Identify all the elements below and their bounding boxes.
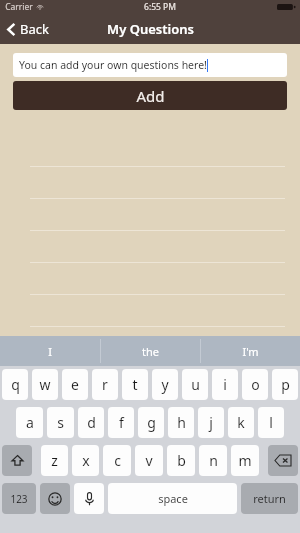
button[interactable]: b [167, 445, 195, 476]
staticText: the [142, 344, 159, 359]
button[interactable]: g [138, 407, 164, 438]
button[interactable]: k [228, 407, 254, 438]
button[interactable]: Dictate [74, 483, 104, 514]
staticText: return [253, 491, 286, 506]
staticText: You can add your own questions here! [19, 58, 207, 72]
staticText: 6:55 PM [144, 1, 176, 13]
staticText: I'm [242, 344, 259, 359]
staticText: c [114, 451, 121, 470]
button[interactable]: Add [13, 81, 287, 110]
staticText: i [223, 375, 227, 394]
staticText: z [51, 451, 58, 470]
button[interactable] [0, 295, 300, 327]
button[interactable] [0, 263, 300, 295]
staticText: x [82, 451, 90, 470]
button[interactable]: Shift [2, 445, 32, 476]
button[interactable]: You can add your own questions here! [13, 53, 287, 77]
staticText: 123 [10, 492, 28, 506]
button[interactable]: o [242, 369, 268, 400]
button[interactable]: 123 [2, 483, 36, 514]
staticText: p [281, 375, 290, 394]
button[interactable]: z [41, 445, 68, 476]
staticText: Back [20, 20, 49, 38]
button[interactable]: x [72, 445, 99, 476]
staticText: h [177, 413, 186, 432]
button[interactable]: n [199, 445, 227, 476]
button[interactable]: Back [0, 16, 59, 42]
button[interactable]: I [0, 336, 100, 366]
staticText: a [26, 413, 34, 432]
staticText: k [237, 413, 245, 432]
button[interactable]: e [62, 369, 88, 400]
button[interactable]: d [78, 407, 104, 438]
staticText: n [209, 451, 218, 470]
staticText: w [39, 375, 51, 394]
staticText: Add [136, 86, 165, 106]
button[interactable]: l [258, 407, 284, 438]
staticText: My Questions [107, 20, 194, 38]
button[interactable]: s [47, 407, 74, 438]
button[interactable]: f [108, 407, 134, 438]
button[interactable]: q [2, 369, 28, 400]
staticText: g [147, 413, 156, 432]
staticText: r [102, 375, 108, 394]
button[interactable]: r [92, 369, 118, 400]
button[interactable]: h [168, 407, 194, 438]
staticText: space [158, 491, 188, 506]
button[interactable]: y [152, 369, 178, 400]
staticText: o [251, 375, 260, 394]
button[interactable]: a [16, 407, 43, 438]
button[interactable]: m [231, 445, 259, 476]
button[interactable]: t [122, 369, 148, 400]
button[interactable] [0, 135, 300, 167]
staticText: e [71, 375, 79, 394]
staticText: Carrier [5, 1, 33, 13]
button[interactable]: c [103, 445, 131, 476]
button[interactable]: w [32, 369, 58, 400]
staticText: u [191, 375, 200, 394]
button[interactable]: Backspace [268, 445, 298, 476]
button[interactable]: v [135, 445, 163, 476]
staticText: v [145, 451, 153, 470]
button[interactable]: j [198, 407, 224, 438]
staticText: f [119, 413, 124, 432]
staticText: b [177, 451, 186, 470]
button[interactable]: I'm [201, 336, 300, 366]
button[interactable]: i [212, 369, 238, 400]
button[interactable]: u [182, 369, 208, 400]
button[interactable]: return [241, 483, 298, 514]
staticText: s [57, 413, 64, 432]
staticText: l [269, 413, 273, 432]
staticText: y [161, 375, 169, 394]
staticText: q [11, 375, 20, 394]
staticText: t [132, 375, 138, 394]
staticText: m [238, 451, 252, 470]
staticText: I [48, 344, 52, 359]
button[interactable]: the [101, 336, 200, 366]
button[interactable]: space [108, 483, 237, 514]
staticText: d [87, 413, 96, 432]
button[interactable] [0, 167, 300, 199]
button[interactable] [0, 199, 300, 231]
staticText: j [209, 413, 213, 432]
button[interactable]: p [272, 369, 298, 400]
button[interactable] [0, 231, 300, 263]
button[interactable]: Emoji [40, 483, 70, 514]
